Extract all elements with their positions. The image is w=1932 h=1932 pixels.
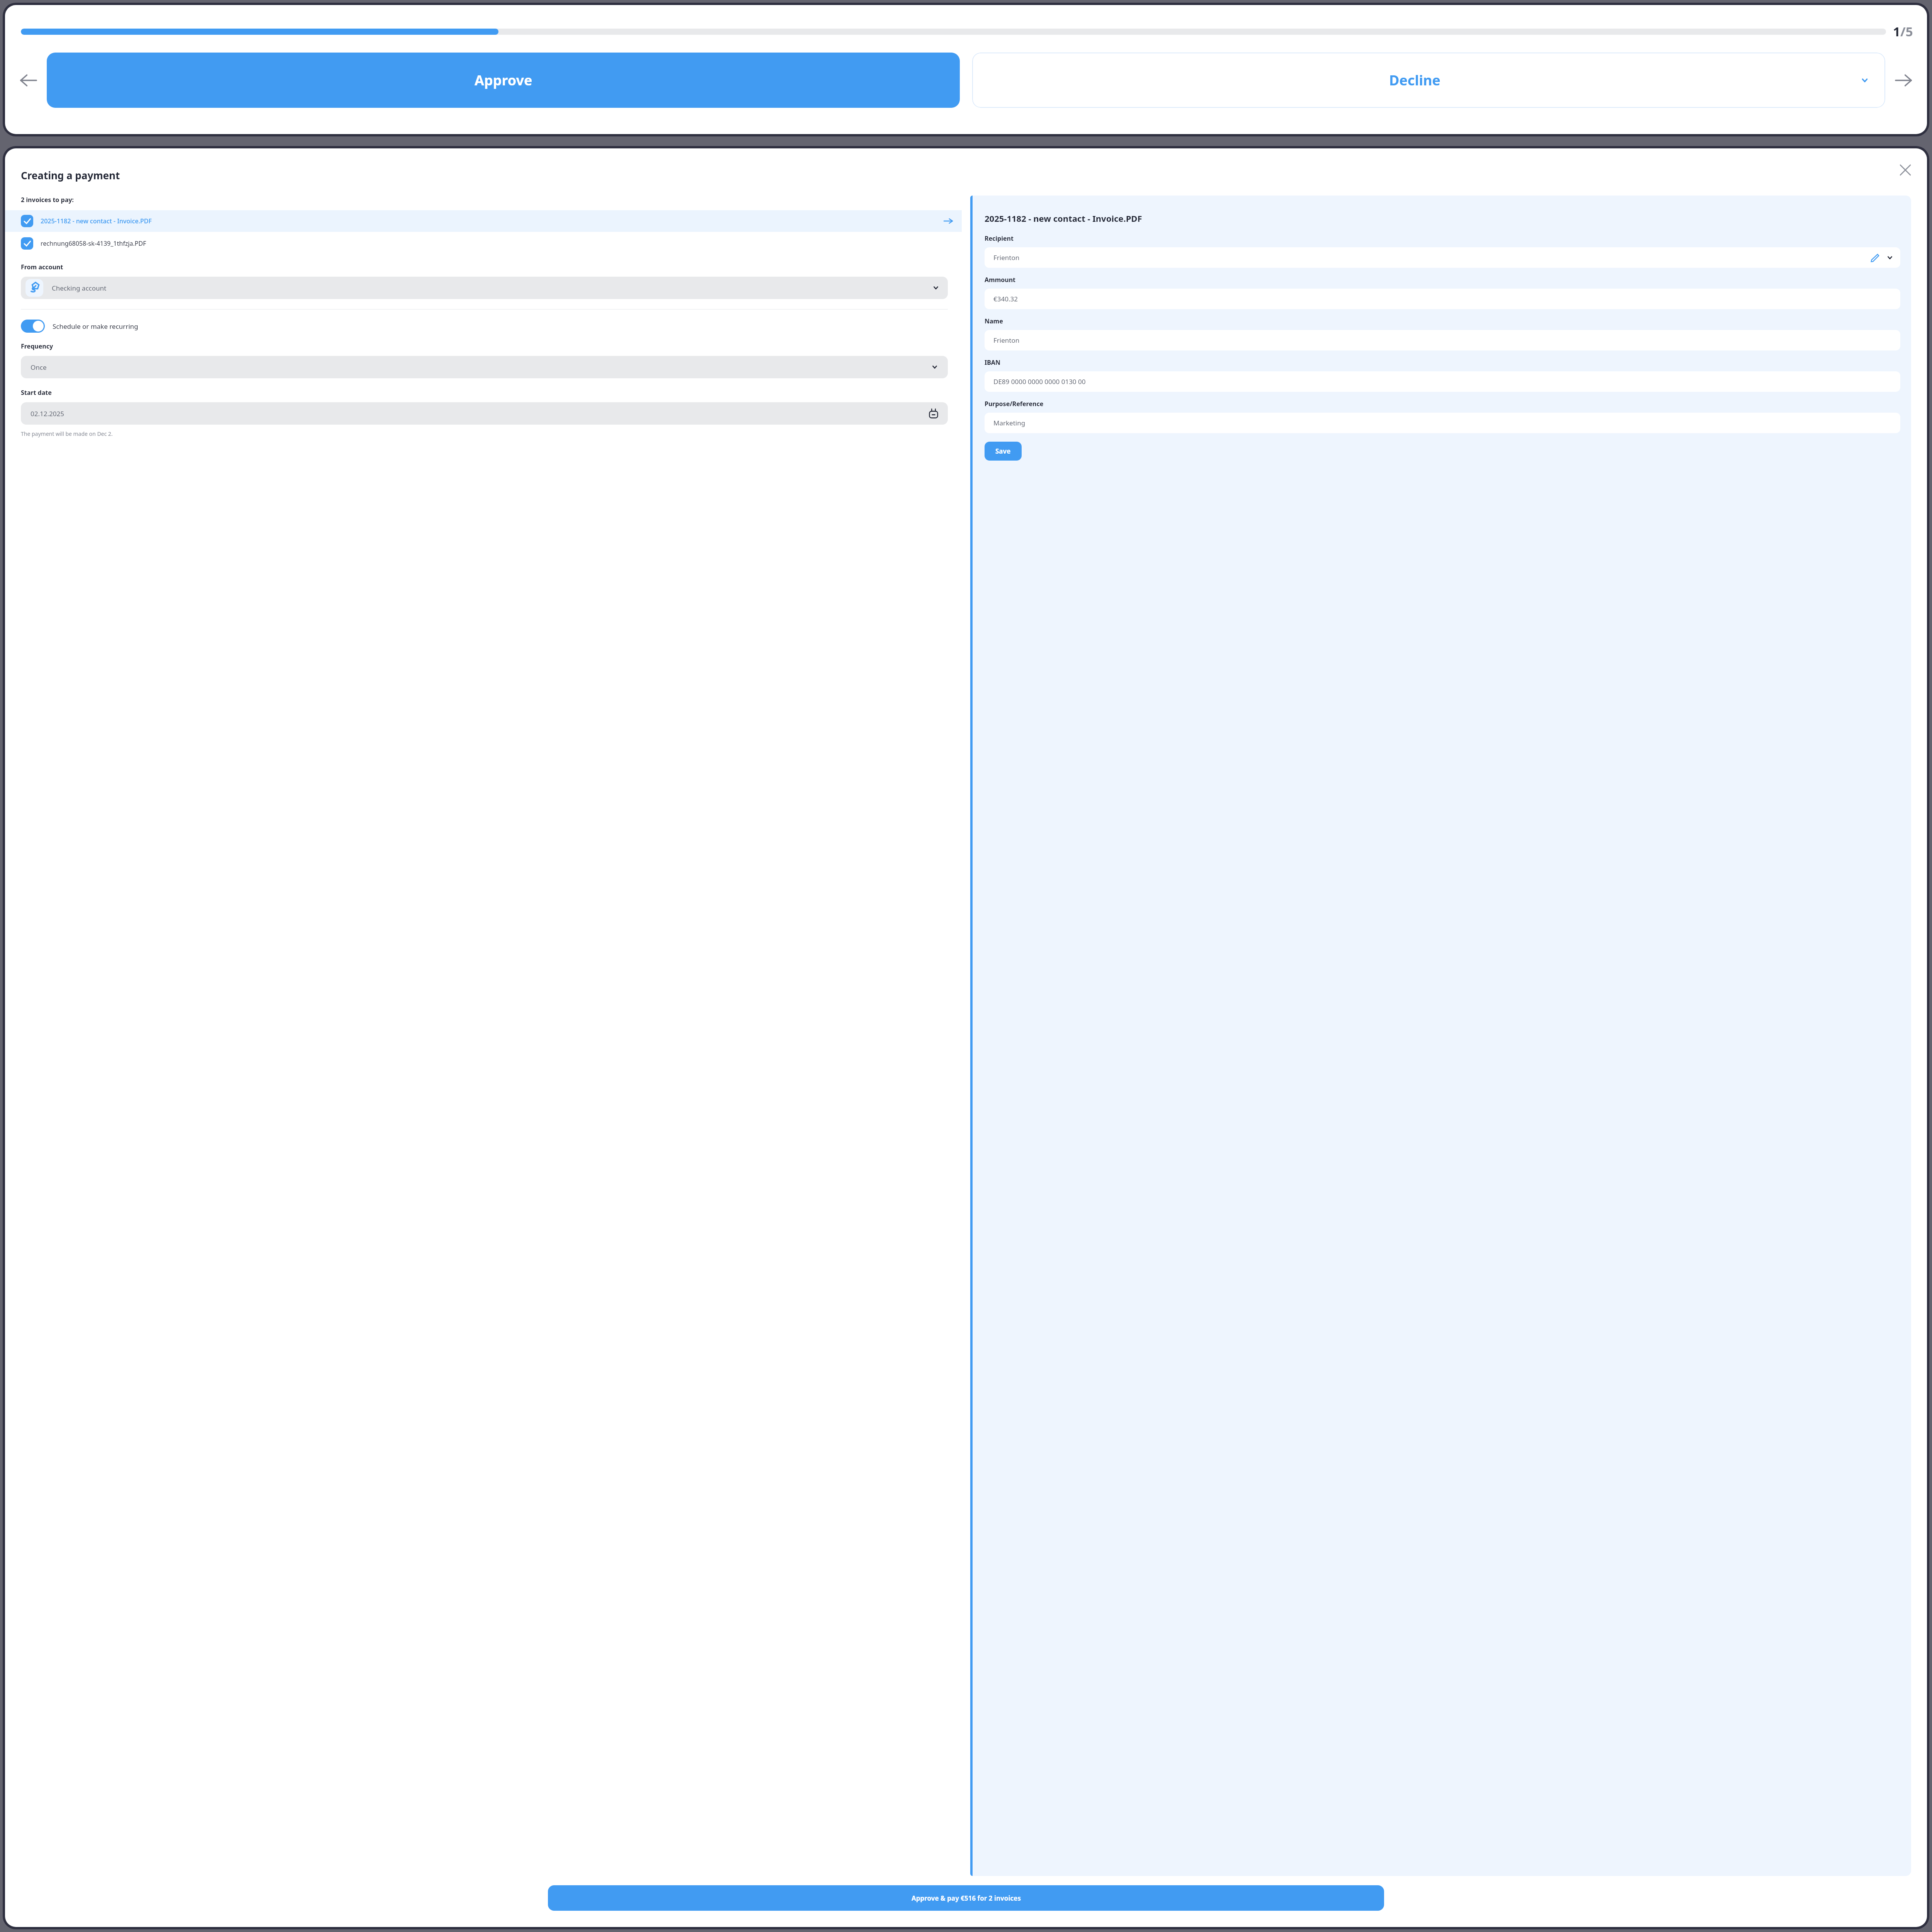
staticText: /5 (1900, 23, 1913, 40)
button[interactable]: Edit recipient (1869, 252, 1880, 263)
staticText: 1 (1893, 23, 1900, 40)
staticText: 2 invoices to pay: (21, 196, 74, 204)
button[interactable]: Previous (17, 68, 41, 92)
button[interactable]: Schedule or make recurring (21, 320, 948, 333)
button[interactable]: Close (1895, 159, 1916, 181)
button[interactable]: rechnung68058-sk-4139_1thfzja.PDF (5, 233, 962, 254)
staticText: €340.32 (993, 294, 1018, 303)
staticText: Once (31, 363, 47, 372)
staticText: Decline (1389, 71, 1440, 90)
staticText: Creating a payment (21, 168, 120, 182)
staticText: Start date (21, 388, 52, 397)
button[interactable]: Approve & pay €516 for 2 invoices (548, 1885, 1384, 1911)
staticText: 02.12.2025 (31, 409, 64, 418)
staticText: The payment will be made on Dec 2. (21, 430, 113, 437)
staticText: rechnung68058-sk-4139_1thfzja.PDF (41, 239, 146, 248)
button[interactable]: Marketing (985, 413, 1900, 433)
staticText: Checking account (52, 284, 107, 293)
button[interactable]: Decline (972, 53, 1885, 108)
button[interactable]: €340.32 (985, 289, 1900, 309)
button[interactable]: DE89 0000 0000 0000 0130 00 (985, 371, 1900, 392)
button[interactable]: Save (985, 442, 1022, 461)
button[interactable]: Frienton (985, 330, 1900, 350)
staticText: Frienton (993, 253, 1020, 262)
staticText: Frienton (993, 336, 1020, 345)
button[interactable]: 02.12.2025 (21, 402, 948, 425)
staticText: 2025-1182 - new contact - Invoice.PDF (985, 213, 1142, 224)
staticText: IBAN (985, 358, 1000, 367)
button[interactable]: Frienton (985, 247, 1900, 268)
staticText: Frequency (21, 342, 53, 350)
button[interactable]: Next (1891, 68, 1915, 92)
staticText: Ammount (985, 276, 1016, 284)
staticText: 2025-1182 - new contact - Invoice.PDF (41, 217, 152, 225)
staticText: Purpose/Reference (985, 400, 1044, 408)
button[interactable]: Approve (47, 53, 960, 108)
staticText: Approve & pay €516 for 2 invoices (912, 1894, 1021, 1903)
staticText: Save (995, 447, 1011, 456)
staticText: Approve (474, 71, 532, 90)
staticText: From account (21, 263, 63, 271)
button[interactable]: Checking account (21, 277, 948, 299)
staticText: Recipient (985, 234, 1014, 243)
staticText: Schedule or make recurring (53, 322, 138, 331)
staticText: DE89 0000 0000 0000 0130 00 (993, 377, 1086, 386)
button[interactable]: Once (21, 356, 948, 378)
staticText: Marketing (993, 418, 1026, 427)
button[interactable]: 2025-1182 - new contact - Invoice.PDF (5, 210, 962, 232)
staticText: Name (985, 317, 1003, 325)
